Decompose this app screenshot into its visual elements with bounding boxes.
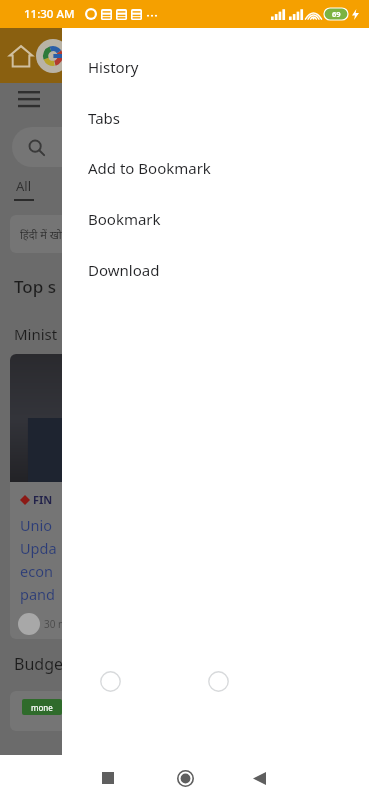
button[interactable]: FIN bbox=[10, 354, 369, 639]
staticText: Unio bbox=[20, 515, 53, 535]
staticText: pand bbox=[20, 584, 55, 604]
staticText: Budge bbox=[14, 653, 63, 675]
button[interactable]: Tabs bbox=[62, 96, 369, 140]
button[interactable]: History bbox=[62, 45, 369, 89]
button[interactable]: Option two bbox=[198, 661, 238, 701]
staticText: Bookmark bbox=[88, 209, 161, 229]
staticText: All bbox=[16, 177, 32, 195]
staticText: हिंदी में खोज bbox=[20, 227, 70, 242]
button[interactable]: Option one bbox=[90, 661, 130, 701]
button[interactable]: Add to Bookmark bbox=[62, 146, 369, 190]
staticText: Tabs bbox=[88, 108, 120, 128]
staticText: econ bbox=[20, 561, 53, 581]
staticText: 69 bbox=[332, 9, 341, 19]
staticText: Minist bbox=[14, 324, 58, 344]
button[interactable]: Bookmark bbox=[62, 197, 369, 241]
staticText: Upda bbox=[20, 538, 57, 558]
staticText: FIN bbox=[33, 492, 53, 507]
staticText: History bbox=[88, 57, 139, 77]
staticText: 11:30 AM bbox=[24, 6, 75, 22]
staticText: Add to Bookmark bbox=[88, 158, 211, 178]
button[interactable]: Recents bbox=[88, 758, 128, 798]
staticText: Top s bbox=[14, 275, 56, 298]
button[interactable]: Home bbox=[165, 758, 205, 798]
button[interactable]: Download bbox=[62, 248, 369, 292]
staticText: mone bbox=[31, 702, 53, 713]
staticText: Download bbox=[88, 260, 160, 280]
staticText: 30 mi bbox=[44, 617, 70, 631]
button[interactable]: Back bbox=[239, 758, 279, 798]
